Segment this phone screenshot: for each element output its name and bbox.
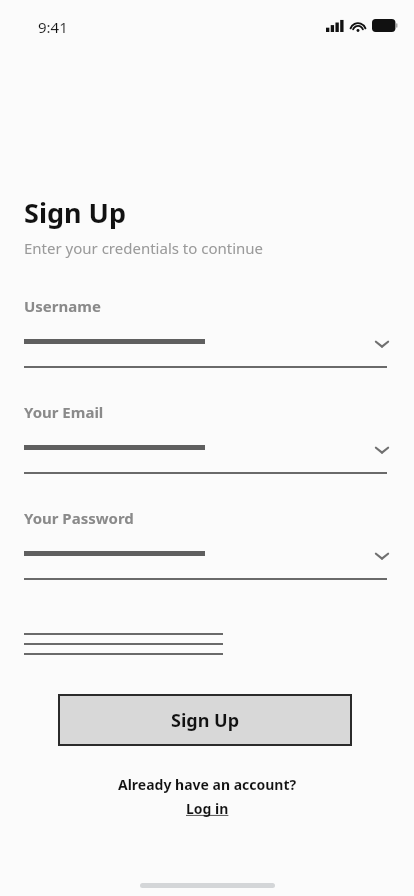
staticText: Your Password: [24, 508, 134, 528]
button[interactable]: Sign Up: [58, 694, 352, 746]
button[interactable]: Username: [0, 296, 414, 372]
button[interactable]: Expand Your Password: [368, 542, 396, 570]
staticText: Sign Up: [171, 708, 240, 733]
staticText: Enter your credentials to continue: [24, 238, 264, 258]
button[interactable]: Expand Username: [368, 330, 396, 358]
staticText: Username: [24, 296, 101, 316]
staticText: Log in: [186, 799, 229, 818]
staticText: 9:41: [38, 17, 68, 37]
button[interactable]: Your Email: [0, 402, 414, 478]
staticText: Sign Up: [24, 194, 127, 231]
staticText: Already have an account?: [118, 775, 297, 794]
button[interactable]: Your Password: [0, 508, 414, 584]
button[interactable]: Expand Your Email: [368, 436, 396, 464]
button[interactable]: Log in: [186, 799, 229, 818]
staticText: Your Email: [24, 402, 104, 422]
